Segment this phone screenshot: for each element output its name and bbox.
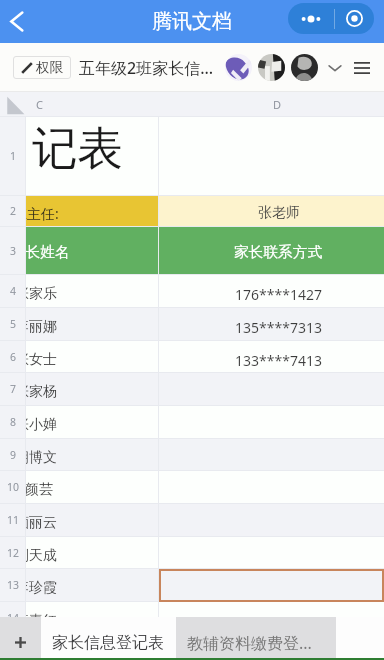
button[interactable]: Add sheet (0, 617, 41, 660)
staticText: 11 (7, 513, 20, 527)
staticText: 5 (10, 317, 17, 331)
button[interactable]: 权限 (13, 56, 71, 79)
staticText: 133****7413 (235, 351, 322, 370)
staticText: 记表 (32, 120, 123, 177)
staticText: 缅丽云 (26, 514, 57, 532)
button[interactable]: Expand (324, 57, 346, 79)
button[interactable]: Menu (351, 57, 373, 79)
staticText: 家长信息登记表 (52, 633, 164, 653)
button[interactable]: Collaborator (258, 54, 285, 81)
staticText: 4 (10, 284, 17, 298)
staticText: 8 (10, 415, 17, 429)
staticText: 9 (10, 448, 17, 462)
staticText: 7 (10, 382, 17, 396)
staticText: 135****7313 (235, 318, 322, 337)
button[interactable]: 教辅资料缴费登... (176, 617, 336, 660)
staticText: 14 (7, 611, 20, 617)
button[interactable]: Collaborator (225, 54, 252, 81)
staticText: 张小婵 (26, 416, 57, 434)
staticText: 13 (7, 578, 20, 592)
button[interactable]: Close (335, 3, 374, 34)
staticText: C (36, 97, 43, 112)
staticText: 张女士 (26, 351, 57, 369)
staticText: 权限 (36, 59, 63, 76)
staticText: 10 (7, 480, 20, 494)
staticText: 五年级2班家长信... (79, 57, 214, 79)
staticText: 3 (10, 244, 17, 258)
staticText: 胡博文 (26, 449, 57, 467)
staticText: 李丽娜 (26, 318, 57, 336)
button[interactable] (336, 617, 384, 660)
staticText: 教辅资料缴费登... (187, 632, 312, 654)
button[interactable]: Collaborator (291, 54, 318, 81)
staticText: 李珍霞 (26, 579, 57, 597)
staticText: 家长联系方式 (234, 243, 323, 262)
staticText: 颜芸 (26, 481, 53, 499)
staticText: 张家乐 (26, 285, 57, 303)
staticText: 6 (10, 350, 17, 364)
staticText: 家长姓名 (26, 243, 70, 262)
staticText: 班主任: (26, 204, 59, 223)
staticText: D (273, 97, 282, 112)
staticText: 张老师 (258, 204, 300, 222)
staticText: 张家杨 (26, 383, 57, 401)
staticText: 176****1427 (235, 285, 322, 304)
staticText: 腾讯文档 (152, 9, 232, 34)
staticText: 12 (7, 546, 20, 560)
staticText: 1 (10, 149, 17, 163)
staticText: 李素红 (26, 612, 57, 617)
button[interactable]: 家长信息登记表 (41, 617, 176, 660)
button[interactable]: Back (0, 0, 38, 43)
button[interactable]: More (288, 3, 334, 34)
staticText: 2 (10, 204, 17, 218)
staticText: 刘天成 (26, 547, 57, 565)
